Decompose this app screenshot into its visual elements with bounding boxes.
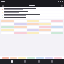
button[interactable]: Profile	[50, 59, 54, 64]
button[interactable]	[2, 57, 9, 59]
button[interactable]	[18, 57, 26, 59]
button[interactable]	[27, 57, 35, 59]
button[interactable]	[54, 57, 62, 59]
button[interactable]	[10, 57, 17, 59]
button[interactable]: Menu	[1, 4, 4, 7]
button[interactable]: Tasks	[37, 59, 41, 64]
button[interactable]	[1, 8, 63, 10]
button[interactable]	[1, 14, 63, 16]
button[interactable]: Calendar	[23, 59, 27, 64]
button[interactable]	[36, 57, 44, 59]
button[interactable]: Home	[10, 59, 14, 64]
button[interactable]	[1, 17, 63, 18]
button[interactable]	[1, 11, 63, 13]
button[interactable]: Search	[60, 4, 63, 7]
